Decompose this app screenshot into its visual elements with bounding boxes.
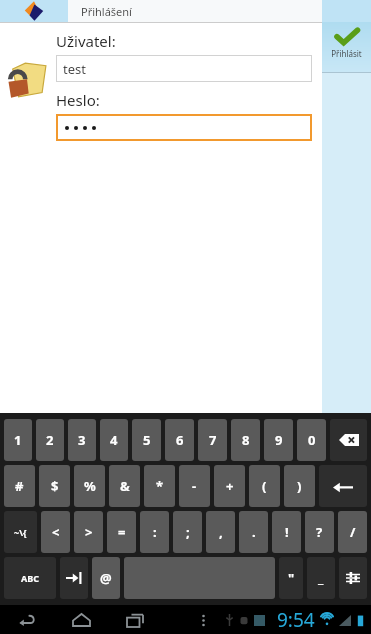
button[interactable]: ABC bbox=[4, 557, 56, 599]
button[interactable]: _ bbox=[307, 557, 335, 599]
button[interactable]: 8 bbox=[231, 419, 260, 461]
button[interactable]: = bbox=[107, 511, 136, 553]
staticText: " bbox=[288, 569, 295, 587]
staticText: ; bbox=[186, 523, 190, 541]
button[interactable]: 6 bbox=[165, 419, 194, 461]
staticText: 9:54 bbox=[277, 607, 315, 633]
button[interactable]: ( bbox=[249, 465, 280, 507]
staticText: 4 bbox=[110, 431, 118, 449]
staticText: 3 bbox=[78, 431, 86, 449]
staticText: > bbox=[85, 523, 93, 541]
button[interactable]: @ bbox=[92, 557, 120, 599]
staticText: ? bbox=[316, 523, 323, 541]
staticText: 8 bbox=[242, 431, 250, 449]
button[interactable]: 4 bbox=[100, 419, 128, 461]
button[interactable]: $ bbox=[39, 465, 70, 507]
button[interactable]: ~\{ bbox=[4, 511, 37, 553]
button[interactable]: ? bbox=[305, 511, 334, 553]
button[interactable]: + bbox=[214, 465, 245, 507]
staticText: 2 bbox=[46, 431, 54, 449]
staticText: ~\{ bbox=[14, 526, 27, 538]
button[interactable]: Přihlásit bbox=[322, 22, 371, 72]
button[interactable]: 7 bbox=[198, 419, 227, 461]
staticText: . bbox=[252, 523, 256, 541]
staticText: 6 bbox=[176, 431, 184, 449]
button[interactable]: 5 bbox=[132, 419, 161, 461]
button[interactable]: 2 bbox=[36, 419, 64, 461]
button[interactable]: , bbox=[206, 511, 235, 553]
button[interactable]: / bbox=[338, 511, 367, 553]
button[interactable]: test bbox=[56, 55, 312, 82]
button[interactable]: ) bbox=[284, 465, 315, 507]
staticText: < bbox=[52, 523, 60, 541]
button[interactable]: > bbox=[74, 511, 103, 553]
button[interactable]: ! bbox=[272, 511, 301, 553]
button[interactable]: 9 bbox=[264, 419, 293, 461]
button[interactable]: ; bbox=[173, 511, 202, 553]
button[interactable]: tab bbox=[60, 557, 88, 599]
button[interactable]: : bbox=[140, 511, 169, 553]
staticText: 7 bbox=[209, 431, 217, 449]
button[interactable]: & bbox=[109, 465, 140, 507]
staticText: $ bbox=[51, 477, 59, 495]
staticText: , bbox=[219, 523, 223, 541]
button[interactable]: settings bbox=[339, 557, 367, 599]
button[interactable]: * bbox=[144, 465, 175, 507]
staticText: * bbox=[156, 477, 164, 495]
staticText: Přihlášení bbox=[81, 4, 132, 19]
staticText: ABC bbox=[21, 572, 39, 584]
button[interactable]: - bbox=[179, 465, 210, 507]
button[interactable]: 1 bbox=[4, 419, 32, 461]
staticText: # bbox=[15, 477, 24, 495]
staticText: / bbox=[350, 523, 356, 541]
button[interactable]: backspace bbox=[330, 419, 367, 461]
button[interactable]: . bbox=[239, 511, 268, 553]
staticText: @ bbox=[100, 569, 112, 587]
staticText: Uživatel: bbox=[56, 31, 116, 51]
staticText: - bbox=[192, 477, 197, 495]
button[interactable]: Recents bbox=[122, 607, 148, 633]
button[interactable]: % bbox=[74, 465, 105, 507]
staticText: ) bbox=[297, 477, 302, 495]
staticText: + bbox=[226, 477, 234, 495]
button[interactable]: # bbox=[4, 465, 35, 507]
button[interactable]: " bbox=[279, 557, 303, 599]
button[interactable] bbox=[56, 114, 312, 141]
staticText: ! bbox=[285, 523, 289, 541]
staticText: : bbox=[153, 523, 157, 541]
button[interactable]: 0 bbox=[297, 419, 326, 461]
staticText: 5 bbox=[143, 431, 151, 449]
button[interactable]: 3 bbox=[68, 419, 96, 461]
staticText: _ bbox=[318, 569, 324, 587]
button[interactable]: Back bbox=[14, 607, 40, 633]
staticText: ( bbox=[262, 477, 267, 495]
staticText: % bbox=[84, 477, 96, 495]
staticText: Heslo: bbox=[56, 90, 100, 110]
staticText: test bbox=[63, 60, 86, 78]
button[interactable]: Home bbox=[68, 607, 94, 633]
staticText: 1 bbox=[14, 431, 22, 449]
staticText: 9 bbox=[275, 431, 283, 449]
staticText: Přihlásit bbox=[331, 48, 362, 59]
staticText: & bbox=[120, 477, 130, 495]
staticText: = bbox=[118, 523, 126, 541]
staticText: 0 bbox=[308, 431, 316, 449]
button[interactable]: < bbox=[41, 511, 70, 553]
button[interactable]: enter bbox=[319, 465, 367, 507]
